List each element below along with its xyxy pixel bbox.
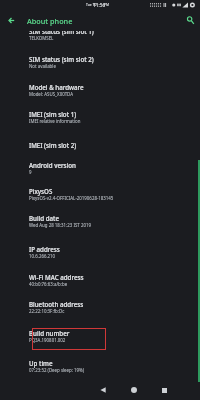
staticText: 11:56 bbox=[93, 2, 106, 9]
staticText: Build date bbox=[29, 214, 60, 222]
button[interactable]: Android version bbox=[0, 158, 200, 184]
staticText: Bluetooth address bbox=[29, 300, 84, 308]
staticText: Wi-Fi MAC address bbox=[29, 273, 84, 281]
staticText: 22:22:10:3F:fb:Dc bbox=[29, 308, 65, 314]
staticText: IMEI (sim slot 2) bbox=[29, 141, 77, 149]
staticText: Android version bbox=[29, 161, 76, 169]
button[interactable]: Home bbox=[124, 380, 144, 400]
staticText: 40:b0:76:63:a/b:be bbox=[29, 281, 68, 287]
staticText: Up time bbox=[29, 359, 53, 367]
button[interactable]: Model & hardware bbox=[0, 80, 200, 106]
button[interactable]: IMEI (sim slot 1) bbox=[0, 107, 200, 133]
staticText: SIM status (sim slot 2) bbox=[29, 55, 94, 63]
button[interactable]: Wi-Fi MAC address bbox=[0, 270, 200, 296]
staticText: TELKOMSEL bbox=[29, 35, 54, 41]
staticText: IMEI relative information bbox=[29, 118, 81, 124]
staticText: Wed Aug 28 18:31:23 IST 2019 bbox=[29, 222, 91, 228]
button[interactable]: Recent apps bbox=[154, 380, 174, 400]
staticText: Tue 10 bbox=[86, 2, 97, 6]
button[interactable]: SIM status (sim slot 2) bbox=[0, 52, 200, 78]
button[interactable]: Bluetooth address bbox=[0, 297, 200, 323]
staticText: IMEI (sim slot 1) bbox=[29, 110, 77, 118]
staticText: SIM status (sim slot 1) bbox=[29, 31, 94, 35]
button[interactable]: Build date bbox=[0, 211, 200, 237]
staticText: PM bbox=[104, 2, 110, 6]
staticText: Model: ASUS_X00TDA bbox=[29, 91, 74, 97]
button[interactable]: IMEI (sim slot 2) bbox=[0, 138, 200, 158]
staticText: 10.6.266.210 bbox=[29, 253, 56, 259]
button[interactable]: Back bbox=[93, 380, 113, 400]
staticText: Build number bbox=[29, 329, 70, 337]
staticText: Not available bbox=[29, 63, 56, 69]
button[interactable]: About phone bbox=[27, 16, 73, 26]
button[interactable]: Build number bbox=[0, 326, 200, 352]
button[interactable]: Search bbox=[182, 12, 198, 28]
staticText: 07:23:52 (Deep sleep: 19%) bbox=[29, 367, 85, 373]
button[interactable]: SIM status (sim slot 1) bbox=[0, 31, 200, 50]
staticText: IP address bbox=[29, 245, 60, 253]
button[interactable]: Navigate up bbox=[3, 12, 20, 29]
staticText: PQ3A.190801.002 bbox=[29, 337, 66, 343]
button[interactable]: IP address bbox=[0, 242, 200, 268]
staticText: Model & hardware bbox=[29, 83, 84, 91]
staticText: 9 bbox=[29, 169, 32, 175]
button[interactable]: PixysOS bbox=[0, 184, 200, 210]
staticText: PixysOS bbox=[29, 187, 53, 195]
button[interactable]: Up time bbox=[0, 356, 200, 382]
staticText: PixysOS-v2.4-OFFICIAL-20190628-183145 bbox=[29, 195, 114, 201]
